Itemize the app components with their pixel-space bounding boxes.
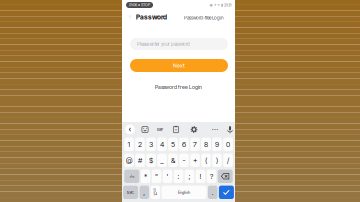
staticText: Please enter your password [137,41,190,47]
button[interactable]: Password free Login [152,82,205,92]
button[interactable]: 1 [124,138,134,151]
staticText: 0 [226,140,230,149]
button[interactable]: 9 [212,138,222,151]
button[interactable]: $ [146,154,156,167]
button[interactable]: ; [185,170,194,183]
button[interactable]: 4 [157,138,167,151]
button[interactable]: =\< [124,170,139,183]
button[interactable]: 12 34 [150,186,160,199]
button[interactable]: # [135,154,145,167]
button[interactable]: Back [127,12,133,22]
staticText: ◉ [210,3,213,7]
staticText: English [178,190,190,195]
staticText: 3 [149,140,153,149]
staticText: * [144,172,147,181]
button[interactable]: ? [207,170,216,183]
button[interactable]: / [223,154,233,167]
button[interactable]: Done [219,186,234,199]
staticText: ABC [127,190,135,195]
staticText: : [177,172,179,181]
staticText: ' [166,172,168,181]
button[interactable]: " [152,170,161,183]
button[interactable]: Emoji [140,124,150,134]
button[interactable]: ) [212,154,222,167]
staticText: ! [199,172,201,181]
staticText: Password-free Login [184,15,224,21]
staticText: ✈ [214,3,217,7]
button[interactable]: Next [130,59,228,72]
staticText: , [143,188,145,197]
staticText: " [155,172,158,181]
button[interactable]: + [190,154,200,167]
button[interactable]: @ [124,154,134,167]
button[interactable]: - [179,154,189,167]
button[interactable]: ' [163,170,172,183]
staticText: 12 34 [153,189,157,196]
button[interactable]: * [141,170,150,183]
button[interactable]: Settings [189,124,199,134]
staticText: 4 [160,140,164,149]
staticText: 21:31 [224,3,231,7]
staticText: . [212,188,214,197]
button[interactable]: 7 [190,138,200,151]
button[interactable]: 0 [223,138,233,151]
staticText: STOP [141,3,150,7]
staticText: 1 [127,140,130,149]
button[interactable]: Back [125,125,135,134]
staticText: # [138,156,142,165]
staticText: ) [216,156,218,165]
button[interactable]: Password-free Login [182,13,225,23]
staticText: Next [173,62,185,69]
button[interactable]: More [210,124,220,134]
staticText: & [171,156,175,165]
button[interactable]: 8 [201,138,211,151]
button[interactable]: ! [196,170,205,183]
staticText: @ [126,156,132,165]
staticText: - [182,156,185,165]
button[interactable]: Voice input [225,124,235,134]
staticText: Password [136,13,167,21]
button[interactable]: English [161,186,206,199]
button[interactable]: : [174,170,183,183]
staticText: ? [210,172,213,181]
button[interactable]: 6 [179,138,189,151]
button[interactable]: 5 [168,138,178,151]
staticText: $ [149,156,153,165]
button[interactable]: ABC [123,186,138,199]
staticText: 2 [138,140,142,149]
staticText: _ [160,156,163,165]
staticText: 5 [171,140,175,149]
staticText: 9 [215,140,219,149]
button[interactable]: , [139,186,149,199]
button[interactable]: 3 [146,138,156,151]
button[interactable]: . [208,186,217,199]
button[interactable]: _ [157,154,167,167]
staticText: 01:06 [129,3,137,7]
button[interactable]: 2 [135,138,145,151]
staticText: / [227,156,229,165]
staticText: Password free Login [155,84,202,90]
staticText: =\< [129,174,134,179]
button[interactable]: & [168,154,178,167]
button[interactable]: GIF [155,124,165,134]
staticText: ; [188,172,190,181]
staticText: ‹ [129,13,131,21]
staticText: 7 [193,140,197,149]
staticText: 8 [204,140,208,149]
staticText: + [193,156,197,165]
staticText: ▾ [218,3,220,7]
staticText: GIF [157,127,163,132]
staticText: ▮ [221,3,223,7]
button[interactable]: Backspace [218,170,233,183]
button[interactable]: Clipboard [171,124,181,134]
staticText: 6 [182,140,186,149]
staticText: ( [205,156,207,165]
button[interactable]: ( [201,154,211,167]
